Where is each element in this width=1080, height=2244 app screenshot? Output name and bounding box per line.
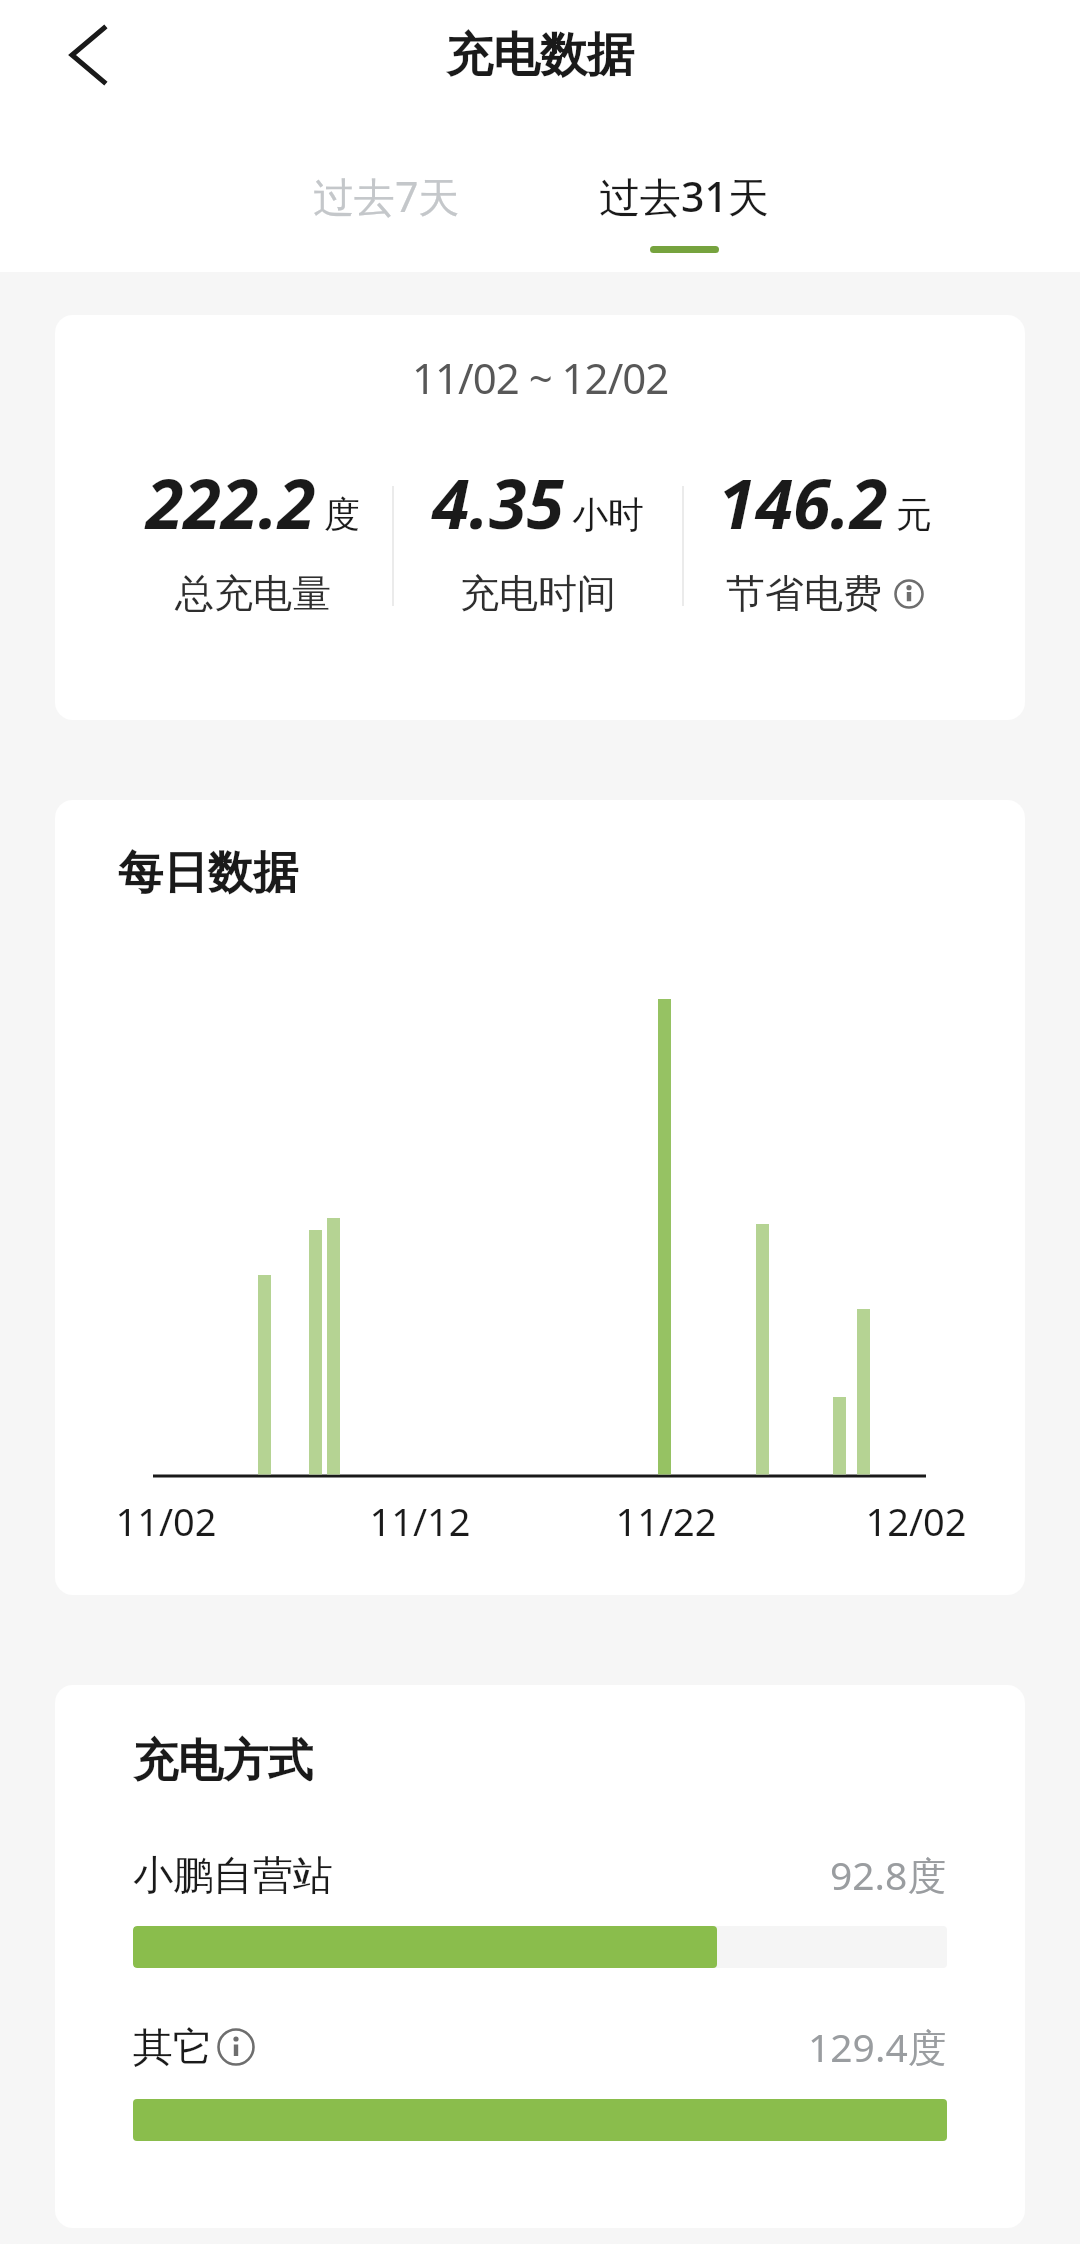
staticText: 92.8度 xyxy=(830,1848,947,1901)
button[interactable] xyxy=(894,579,924,609)
staticText: 222.2 xyxy=(146,456,316,549)
staticText: 过去31天 xyxy=(599,168,769,224)
staticText: 4.35 xyxy=(432,456,564,549)
staticText: 129.4度 xyxy=(808,2020,947,2073)
staticText: 11/02 ~ 12/02 xyxy=(412,349,669,406)
staticText: 11/12 xyxy=(369,1495,471,1547)
staticText: 充电方式 xyxy=(133,1733,313,1790)
staticText: 小鹏自营站 xyxy=(133,1850,333,1900)
staticText: 其它 xyxy=(133,2022,213,2072)
button[interactable]: 过去7天 xyxy=(236,168,536,224)
staticText: 节省电费 xyxy=(726,569,882,618)
staticText: 146.2 xyxy=(718,456,888,549)
staticText: 总充电量 xyxy=(175,569,331,618)
button[interactable] xyxy=(55,23,119,87)
staticText: 充电时间 xyxy=(460,569,616,618)
staticText: 过去7天 xyxy=(313,168,460,224)
staticText: 度 xyxy=(324,492,360,537)
staticText: 小时 xyxy=(572,492,644,537)
staticText: 元 xyxy=(896,492,932,537)
button[interactable]: 过去31天 xyxy=(534,168,834,253)
button[interactable] xyxy=(217,2028,255,2066)
staticText: 11/02 xyxy=(115,1495,217,1547)
staticText: 每日数据 xyxy=(118,845,298,902)
staticText: 11/22 xyxy=(615,1495,717,1547)
staticText: 充电数据 xyxy=(446,26,634,85)
staticText: 12/02 xyxy=(865,1495,967,1547)
